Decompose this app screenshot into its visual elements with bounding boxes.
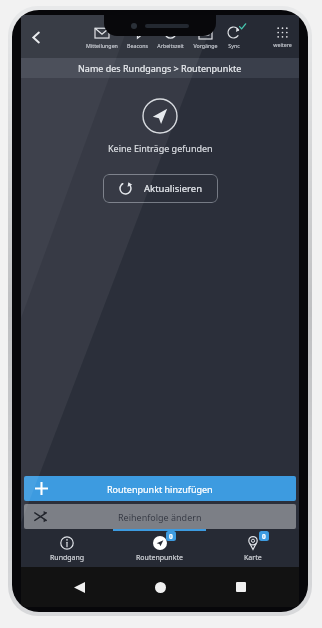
staticText: Keine Einträge gefunden (108, 142, 213, 154)
button[interactable]: Beacons (126, 24, 149, 49)
staticText: Karte (244, 553, 262, 563)
staticText: weitere (273, 41, 292, 48)
staticText: Aktualisieren (144, 182, 202, 195)
staticText: 0 (262, 532, 266, 541)
staticText: Mitteilungen (86, 42, 118, 49)
staticText: Rundgang (50, 553, 85, 563)
button[interactable]: Vorgänge (192, 24, 219, 49)
button[interactable]: weitere (271, 26, 294, 48)
button[interactable]: 1 (85, 24, 119, 49)
button[interactable]: Reihenfolge ändern (24, 504, 296, 529)
button[interactable]: Recent apps (229, 575, 253, 599)
staticText: Arbeitszeit (157, 42, 184, 49)
button[interactable]: Aktualisieren (103, 174, 218, 203)
button[interactable]: Home (148, 575, 172, 599)
staticText: Vorgänge (193, 42, 218, 49)
staticText: 0 (169, 532, 173, 541)
button[interactable]: Routenpunkt hinzufügen (24, 476, 296, 501)
button[interactable]: 0 (206, 531, 299, 567)
button[interactable]: 0 (113, 531, 206, 567)
staticText: Sync (228, 42, 240, 49)
staticText: Name des Rundgangs > Routenpunkte (78, 62, 242, 74)
button[interactable]: Arbeitszeit (156, 24, 185, 49)
button[interactable]: Sync (226, 24, 241, 49)
button[interactable]: Rundgang (21, 531, 113, 567)
staticText: Routenpunkt hinzufügen (107, 483, 213, 495)
staticText: Reihenfolge ändern (118, 511, 202, 523)
button[interactable]: Zurück (23, 24, 49, 50)
staticText: Routenpunkte (136, 553, 183, 563)
staticText: Beacons (127, 42, 148, 49)
button[interactable]: Back (67, 575, 91, 599)
